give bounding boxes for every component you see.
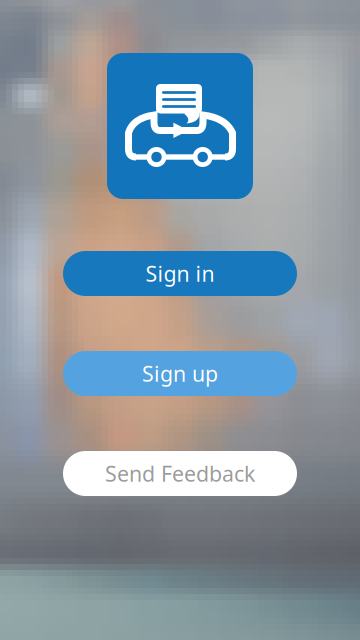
button[interactable]: Sign up: [63, 351, 297, 396]
button[interactable]: Sign in: [63, 251, 297, 296]
staticText: Sign up: [142, 359, 218, 388]
staticText: Sign in: [145, 259, 214, 288]
staticText: Send Feedback: [105, 459, 255, 488]
button[interactable]: Send Feedback: [63, 451, 297, 496]
